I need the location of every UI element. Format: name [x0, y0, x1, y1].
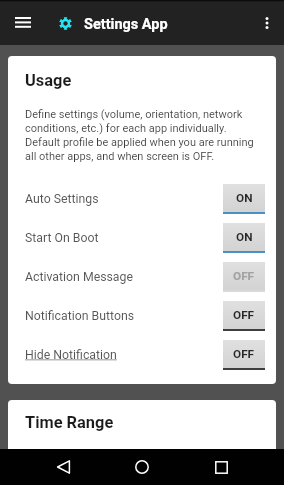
- staticText: OFF: [233, 347, 255, 361]
- staticText: Start On Boot: [25, 231, 99, 245]
- button[interactable]: Start On Boot: [25, 218, 265, 257]
- staticText: Hide Notification: [25, 348, 117, 362]
- button[interactable]: Recents: [198, 449, 244, 485]
- staticText: Define settings (volume, orientation, ne…: [25, 108, 254, 163]
- button[interactable]: OFF: [223, 262, 265, 290]
- staticText: Settings App: [84, 16, 168, 33]
- button[interactable]: OFF: [223, 340, 265, 368]
- button[interactable]: Menu: [7, 0, 38, 45]
- staticText: OFF: [233, 269, 255, 283]
- button[interactable]: Hide Notification: [25, 335, 265, 374]
- button[interactable]: ON: [223, 223, 265, 251]
- staticText: Time Range: [25, 413, 114, 432]
- staticText: OFF: [233, 308, 255, 322]
- button[interactable]: Notification Buttons: [25, 296, 265, 335]
- button[interactable]: Back: [40, 449, 86, 485]
- button[interactable]: Home: [119, 449, 165, 485]
- button[interactable]: Activation Message: [25, 257, 265, 296]
- button[interactable]: More options: [249, 0, 284, 45]
- staticText: ON: [236, 191, 253, 205]
- staticText: Usage: [25, 71, 72, 90]
- staticText: Activation Message: [25, 270, 133, 284]
- button[interactable]: ON: [223, 184, 265, 212]
- staticText: Notification Buttons: [25, 309, 135, 323]
- button[interactable]: OFF: [223, 301, 265, 329]
- staticText: ON: [236, 230, 253, 244]
- button[interactable]: Auto Settings: [25, 179, 265, 218]
- staticText: Auto Settings: [25, 192, 99, 206]
